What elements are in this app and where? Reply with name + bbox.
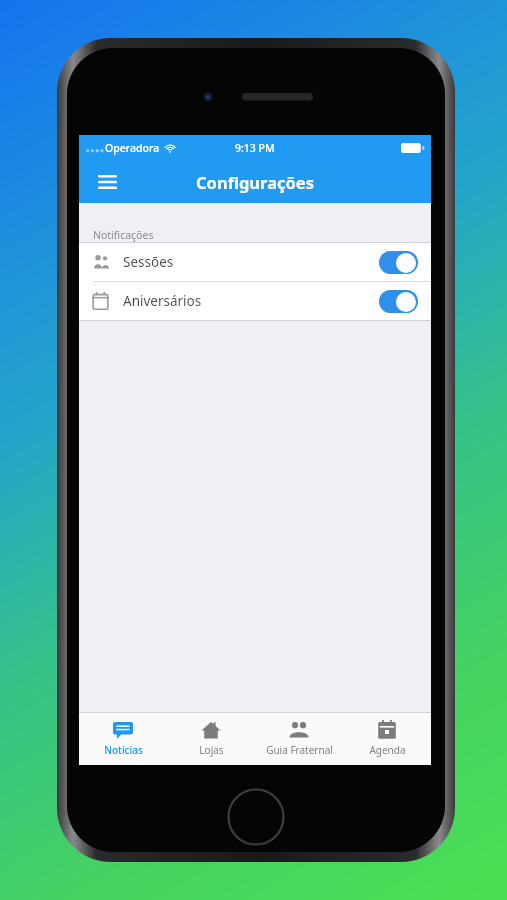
staticText: Configurações <box>196 171 314 193</box>
staticText: Aniversários <box>123 292 202 310</box>
button[interactable]: Guia Fraternal <box>255 713 343 765</box>
staticText: Notificações <box>93 228 154 242</box>
staticText: Sessões <box>123 253 174 271</box>
button[interactable]: Agenda <box>343 713 431 765</box>
button[interactable]: Menu <box>92 167 122 197</box>
staticText: Agenda <box>369 743 406 757</box>
button[interactable]: Aniversários <box>79 282 431 320</box>
button[interactable]: Sessões <box>79 243 431 281</box>
staticText: Operadora <box>105 141 160 155</box>
staticText: Guia Fraternal <box>266 743 333 757</box>
staticText: Lojas <box>199 743 224 757</box>
button[interactable]: Ativado <box>379 251 418 274</box>
button[interactable]: Ativado <box>379 290 418 313</box>
button[interactable]: Notícias <box>79 713 167 765</box>
button[interactable]: Lojas <box>167 713 255 765</box>
staticText: Notícias <box>104 743 143 757</box>
staticText: 9:13 PM <box>235 141 275 155</box>
